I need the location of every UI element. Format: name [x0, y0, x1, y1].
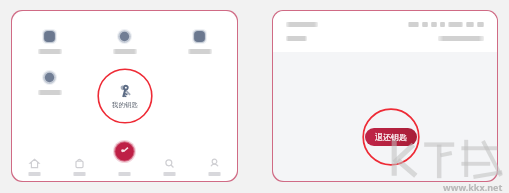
button[interactable]: 钥匙: [113, 140, 136, 163]
button[interactable]: [87, 27, 162, 56]
staticText: 退还钥匙: [375, 132, 407, 142]
staticText: www.kkx.net: [443, 181, 503, 193]
button[interactable]: [102, 147, 147, 181]
button[interactable]: [147, 147, 192, 181]
button[interactable]: [57, 147, 102, 181]
button[interactable]: [12, 27, 87, 56]
button[interactable]: 我的钥匙: [97, 68, 153, 124]
button[interactable]: [12, 68, 87, 97]
button[interactable]: [12, 147, 57, 181]
button[interactable]: [192, 147, 237, 181]
staticText: 我的钥匙: [112, 101, 138, 109]
button[interactable]: [162, 27, 237, 56]
button[interactable]: 退还钥匙: [365, 128, 417, 146]
